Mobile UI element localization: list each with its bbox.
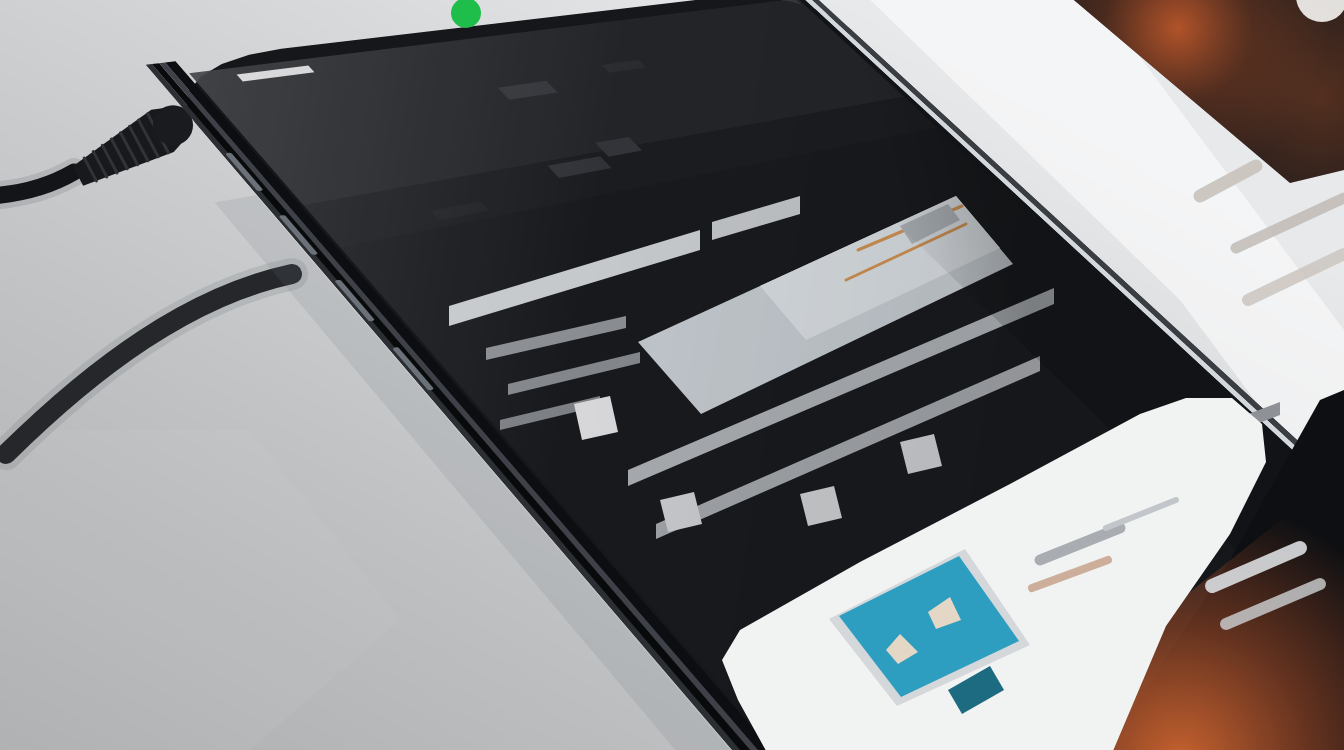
button[interactable]: Call history — [400, 60, 550, 150]
button[interactable]: Voicemail — [560, 100, 710, 195]
button[interactable]: Now playing card — [700, 390, 1300, 750]
button[interactable]: Featured article card — [430, 170, 1050, 450]
button[interactable]: App logo — [600, 430, 720, 520]
button[interactable]: Contacts — [870, 400, 990, 500]
button[interactable]: Favourites — [620, 440, 740, 540]
button[interactable]: Recents — [760, 440, 880, 540]
button[interactable]: Album artwork — [820, 545, 1030, 710]
button[interactable]: Phone app title — [168, 22, 358, 82]
